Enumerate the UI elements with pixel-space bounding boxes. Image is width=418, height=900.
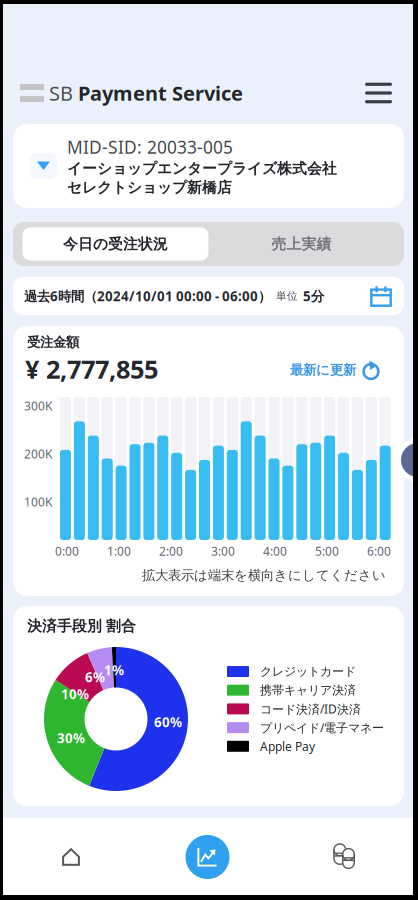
staticText: 30% [57,729,85,747]
staticText: 10% [61,685,89,703]
staticText: コード決済/ID決済 [260,701,361,717]
staticText: 0:00 [55,543,79,559]
staticText: Payment Service [78,80,243,106]
staticText: ¥ 2,777,855 [25,352,158,386]
staticText: MID-SID: 20033-005 [67,135,233,158]
staticText: 200K [24,446,52,462]
staticText: 1% [104,661,124,679]
staticText: 60% [154,713,182,731]
staticText: 3:00 [211,543,235,559]
staticText: 1:00 [107,543,131,559]
staticText: 売上実績 [271,235,331,253]
staticText: 拡大表示は端末を横向きにしてください [142,567,386,583]
staticText: 決済手段別 割合 [27,617,136,635]
staticText: 過去6時間（2024/10/01 00:00 - 06:00） [24,287,271,305]
button[interactable]: Analytics [139,818,276,896]
staticText: 最新に更新 [290,362,356,378]
staticText: 受注金額 [27,334,79,350]
staticText: 5分 [303,287,324,305]
staticText: SB [49,80,73,106]
button[interactable]: MID-SID: 20033-005 [13,124,404,208]
button[interactable]: 今日の受注状況 [22,227,208,260]
staticText: 単位 [276,289,298,302]
staticText: イーショップエンタープライズ株式会社 [67,159,337,177]
button[interactable]: 最新に更新 [290,358,382,382]
staticText: 6:00 [367,543,391,559]
staticText: セレクトショップ新橋店 [67,178,232,196]
staticText: 100K [24,494,52,510]
staticText: クレジットカード [260,664,356,679]
button[interactable]: Select date range [370,285,392,307]
staticText: 5:00 [315,543,339,559]
button[interactable]: Menu [359,77,398,109]
staticText: 4:00 [263,543,287,559]
staticText: 2:00 [159,543,183,559]
button[interactable]: Support [396,438,418,482]
button[interactable]: 売上実績 [208,227,394,260]
button[interactable]: Home [3,818,139,896]
staticText: 携帯キャリア決済 [260,683,356,697]
staticText: 300K [24,398,52,414]
staticText: 6% [85,668,105,686]
staticText: Apple Pay [260,738,315,754]
staticText: プリペイド/電子マネー [260,720,384,735]
staticText: 今日の受注状況 [63,235,168,253]
button[interactable]: Payments [276,818,413,896]
